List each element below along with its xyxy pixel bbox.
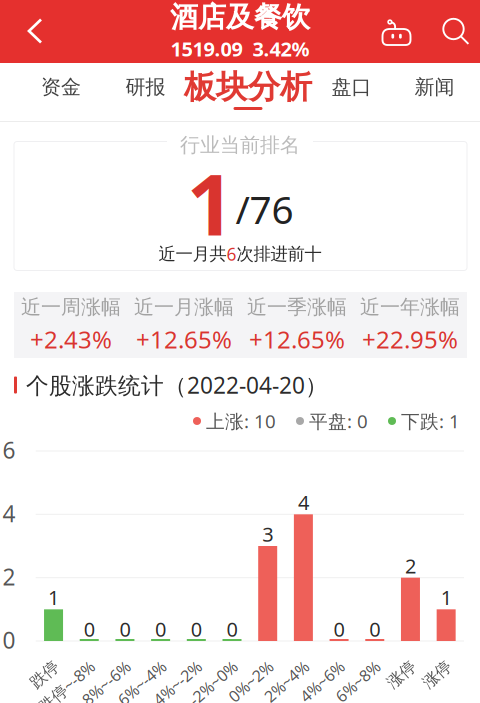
staticText: 酒店及餐饮 xyxy=(170,0,310,34)
staticText: 上涨: 10 xyxy=(206,409,276,433)
staticText: +12.65% xyxy=(249,323,345,355)
staticText: 下跌: 1 xyxy=(401,409,460,433)
staticText: 研报 xyxy=(125,75,165,99)
staticText: -2%~0% xyxy=(188,682,246,703)
staticText: 0 xyxy=(155,616,166,642)
staticText: 1 xyxy=(48,584,59,611)
staticText: 4 xyxy=(2,498,15,528)
staticText: 盘口 xyxy=(331,75,371,99)
staticText: +2.43% xyxy=(30,323,112,355)
staticText: 0 xyxy=(119,616,130,642)
staticText: 1 xyxy=(186,147,234,259)
button[interactable]: 研报 xyxy=(117,65,173,123)
staticText: 4%~6% xyxy=(300,682,353,703)
button[interactable]: 盘口 xyxy=(323,65,379,123)
staticText: +12.65% xyxy=(136,323,232,355)
staticText: -6%~-4% xyxy=(111,682,174,703)
staticText: 0 xyxy=(334,616,345,642)
staticText: 0 xyxy=(2,625,15,655)
staticText: 3.42% xyxy=(252,35,309,62)
staticText: 2 xyxy=(2,562,15,592)
staticText: 0%~2% xyxy=(228,682,281,703)
staticText: 板块分析 xyxy=(184,67,312,107)
staticText: 近一季涨幅 xyxy=(247,295,347,319)
staticText: 行业当前排名 xyxy=(180,133,300,157)
button[interactable]: 资金 xyxy=(33,65,89,123)
staticText: +22.95% xyxy=(362,323,458,355)
staticText: -4%~-2% xyxy=(147,682,210,703)
staticText: 资金 xyxy=(41,75,81,99)
staticText: -8%~-6% xyxy=(75,682,138,703)
staticText: 6 xyxy=(226,242,236,265)
button[interactable]: 智能助手 xyxy=(381,14,415,48)
staticText: 6 xyxy=(2,435,15,465)
staticText: 6%~8% xyxy=(335,682,388,703)
staticText: 涨停 xyxy=(428,682,460,702)
staticText: 近一年涨幅 xyxy=(360,295,460,319)
staticText: 2%~4% xyxy=(264,682,317,703)
staticText: 2 xyxy=(405,552,416,579)
staticText: 4 xyxy=(298,489,309,516)
staticText: 0 xyxy=(369,616,380,642)
staticText: 1519.09 xyxy=(170,35,242,62)
staticText: 0 xyxy=(191,616,202,642)
staticText: 次排进前十 xyxy=(236,243,321,265)
staticText: 跌停 xyxy=(35,682,67,702)
staticText: 近一月涨幅 xyxy=(134,295,234,319)
staticText: 3 xyxy=(262,521,273,547)
button[interactable]: 新闻 xyxy=(406,65,462,123)
staticText: 0 xyxy=(226,616,237,642)
staticText: 个股涨跌统计（2022-04-20） xyxy=(26,370,328,400)
button[interactable]: 板块分析 xyxy=(196,65,300,123)
staticText: 跌停~-8% xyxy=(35,682,103,703)
staticText: 平盘: 0 xyxy=(309,409,368,433)
staticText: /76 xyxy=(235,183,293,235)
button[interactable]: 搜索 xyxy=(440,16,472,48)
staticText: 近一月共 xyxy=(158,243,226,265)
staticText: 新闻 xyxy=(414,75,454,99)
staticText: 近一周涨幅 xyxy=(21,295,121,319)
staticText: 涨停 xyxy=(392,682,424,702)
staticText: 0 xyxy=(84,616,95,642)
staticText: 1 xyxy=(441,584,452,611)
button[interactable]: 返回 xyxy=(11,2,61,60)
